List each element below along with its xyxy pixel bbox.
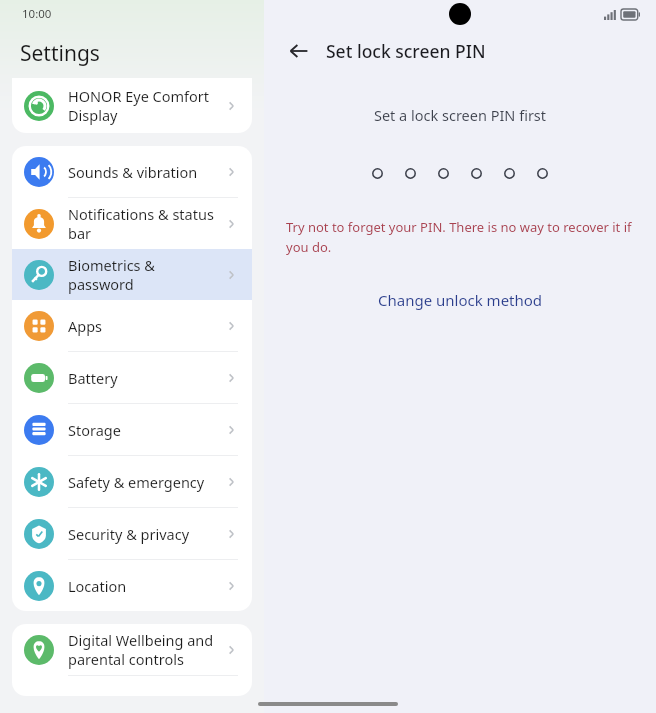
button[interactable]: Notifications & status bar [12,198,252,249]
staticText: Storage [68,420,218,440]
staticText: Safety & emergency [68,472,218,492]
staticText: 10:00 [22,6,52,22]
staticText: Security & privacy [68,524,218,544]
staticText: Settings [20,39,100,68]
staticText: Digital Wellbeing and parental controls [68,630,218,669]
button[interactable]: Safety & emergency [12,456,252,507]
button[interactable]: Sounds & vibration [12,146,252,197]
staticText: Try not to forget your PIN. There is no … [286,218,638,256]
button[interactable]: Location [12,560,252,611]
button[interactable]: Battery [12,352,252,403]
button[interactable]: Storage [12,404,252,455]
button[interactable]: Biometrics & password [12,249,252,300]
button[interactable]: Back [282,34,316,68]
button[interactable]: Digital Wellbeing and parental controls [12,624,252,675]
staticText: Set a lock screen PIN first [264,105,656,125]
staticText: Change unlock method [378,290,543,310]
staticText: HONOR Eye Comfort Display [68,86,224,125]
staticText: Battery [68,368,218,388]
staticText: Set lock screen PIN [326,39,486,63]
staticText: Sounds & vibration [68,162,218,182]
button[interactable]: HONOR Eye Comfort Display [12,78,252,133]
staticText: Apps [68,316,218,336]
button[interactable]: Security & privacy [12,508,252,559]
staticText: Biometrics & password [68,255,218,294]
staticText: Notifications & status bar [68,204,218,243]
button[interactable]: Apps [12,300,252,351]
button[interactable]: Change unlock method [368,286,553,314]
staticText: Location [68,576,218,596]
